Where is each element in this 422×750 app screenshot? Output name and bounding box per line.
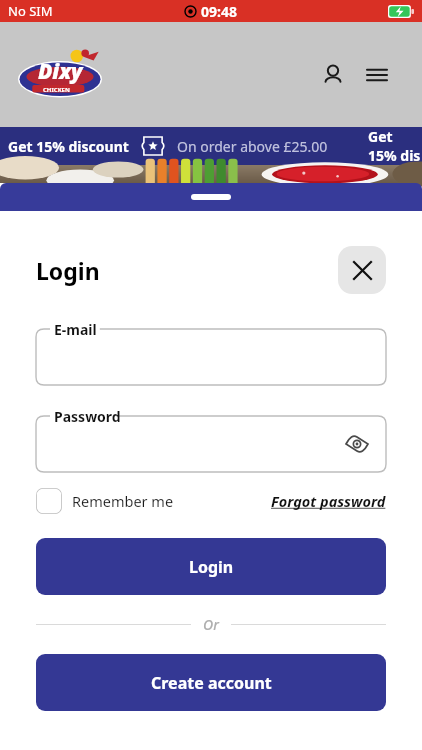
button[interactable]: Show password	[336, 423, 378, 465]
button[interactable]: Forgot password	[271, 491, 386, 511]
staticText: Remember me	[72, 491, 174, 511]
button[interactable]	[36, 329, 386, 385]
staticText: Create account	[151, 672, 272, 694]
staticText: CHICKEN	[43, 86, 70, 94]
staticText: E-mail	[54, 320, 97, 339]
button[interactable]: Remember me	[36, 488, 174, 514]
staticText: 09:48	[201, 2, 237, 21]
staticText: Password	[54, 407, 121, 426]
button[interactable]: Login	[36, 538, 386, 595]
staticText: No SIM	[8, 2, 53, 20]
staticText: Get 15% discount	[8, 137, 129, 156]
button[interactable]: Create account	[36, 654, 386, 711]
staticText: Login	[189, 556, 234, 578]
staticText: On order above £25.00	[177, 137, 328, 156]
button[interactable]: Close	[338, 246, 386, 294]
staticText: Login	[36, 255, 100, 286]
staticText: Forgot password	[271, 491, 386, 511]
button[interactable]: Account	[316, 58, 350, 92]
button[interactable]: Menu	[360, 58, 394, 92]
staticText: Dixy	[38, 57, 83, 86]
staticText: Get 15% discount	[368, 127, 422, 165]
staticText: Or	[203, 615, 219, 634]
button[interactable]	[36, 416, 386, 472]
